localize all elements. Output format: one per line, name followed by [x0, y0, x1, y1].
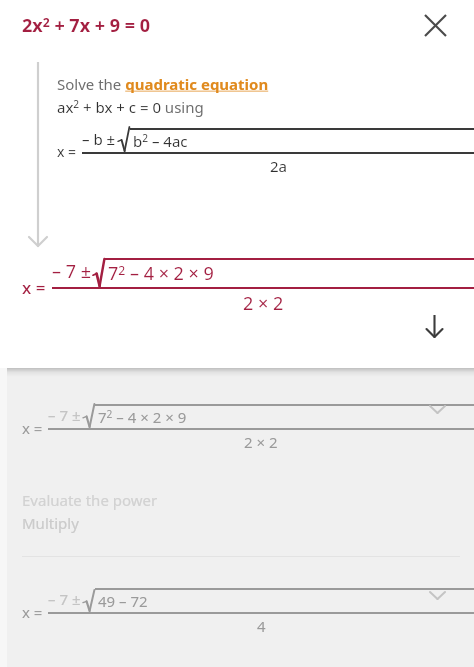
staticText: 2a — [270, 156, 287, 176]
staticText: 72 – 4 × 2 × 9 — [98, 407, 187, 427]
staticText: x = — [22, 276, 46, 299]
staticText: – 7 ± — [52, 259, 91, 284]
staticText: 49 – 72 — [98, 591, 148, 611]
staticText: ax2 + bx + c = 0 using — [57, 97, 204, 117]
button[interactable]: Expand step — [422, 580, 452, 610]
button[interactable]: Expand step — [422, 394, 452, 424]
staticText: x = — [57, 142, 77, 161]
staticText: – b ± — [82, 129, 116, 149]
staticText: Multiply — [22, 513, 79, 533]
staticText: 2 × 2 — [244, 432, 278, 452]
staticText: x = — [22, 418, 43, 438]
staticText: 4 — [257, 616, 266, 636]
staticText: Evaluate the power — [22, 490, 158, 510]
staticText: – 7 ± — [48, 589, 81, 609]
staticText: b2 – 4ac — [133, 131, 188, 151]
staticText: 2x2 + 7x + 9 = 0 — [22, 13, 150, 38]
staticText: Solve the quadratic equation — [57, 74, 269, 94]
button[interactable]: Close — [416, 6, 454, 44]
button[interactable]: Next step — [414, 306, 454, 346]
staticText: – 7 ± — [48, 405, 81, 425]
staticText: 72 – 4 × 2 × 9 — [108, 261, 214, 286]
staticText: x = — [22, 602, 43, 622]
staticText: 2 × 2 — [243, 291, 284, 316]
